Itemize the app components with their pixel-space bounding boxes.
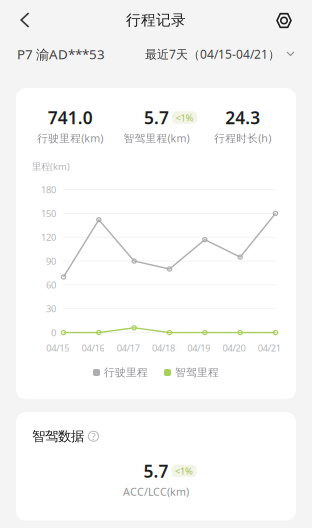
button[interactable]: Back (14, 7, 36, 33)
staticText: 里程(km) (32, 160, 70, 173)
staticText: 04/17 (117, 342, 140, 354)
staticText: 04/20 (223, 342, 246, 354)
staticText: 5.7 (144, 106, 169, 129)
button[interactable]: Info (88, 431, 99, 442)
staticText: P7 渝AD***53 (17, 45, 105, 63)
staticText: 智驾里程(km) (123, 131, 189, 145)
button[interactable]: 最近7天（04/15-04/21） (145, 46, 295, 62)
staticText: 行驶里程 (104, 366, 148, 379)
staticText: 90 (46, 255, 56, 267)
staticText: 行程记录 (126, 11, 186, 29)
staticText: 0 (51, 326, 56, 339)
staticText: 24.3 (225, 106, 260, 129)
staticText: ? (91, 430, 95, 442)
staticText: 150 (41, 207, 56, 220)
staticText: 智驾里程 (175, 366, 219, 379)
staticText: ACC/LCC(km) (123, 484, 189, 499)
staticText: <1% (175, 111, 193, 124)
staticText: 行程时长(h) (214, 131, 271, 145)
staticText: 30 (46, 302, 56, 315)
staticText: 60 (46, 279, 56, 291)
staticText: 04/18 (152, 342, 175, 354)
button[interactable]: Settings (270, 6, 298, 33)
staticText: 04/19 (187, 342, 210, 354)
staticText: 04/16 (81, 342, 104, 354)
staticText: 最近7天（04/15-04/21） (145, 46, 280, 62)
staticText: 741.0 (48, 106, 93, 129)
staticText: 120 (41, 231, 56, 243)
staticText: <1% (175, 465, 193, 477)
staticText: 智驾数据 (32, 428, 84, 444)
staticText: 5.7 (143, 459, 168, 482)
staticText: 04/21 (258, 342, 281, 354)
staticText: 行驶里程(km) (37, 131, 103, 145)
staticText: 180 (41, 183, 56, 196)
staticText: 04/15 (46, 342, 69, 354)
